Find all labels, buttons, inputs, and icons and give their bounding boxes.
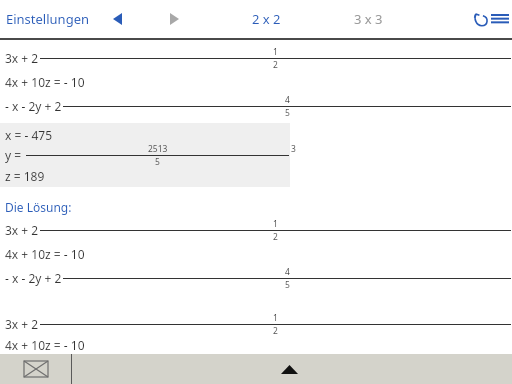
staticText: 4x + 10z = - 10 (5, 337, 85, 353)
staticText: 5 (285, 279, 290, 290)
staticText: 5 (285, 107, 290, 118)
staticText: 2513 (148, 143, 168, 155)
staticText: Die Lösung: (5, 199, 72, 215)
staticText: 2 (273, 325, 278, 336)
staticText: 5 (155, 156, 160, 167)
staticText: 4 (285, 266, 290, 278)
button[interactable]: Undo (468, 6, 494, 32)
staticText: 1 (273, 312, 278, 324)
button[interactable]: Mail (18, 355, 54, 383)
staticText: - x - 2y + 2 (5, 98, 62, 114)
button[interactable]: 2 x 2 (248, 6, 285, 32)
staticText: 3x + 2 (5, 222, 39, 238)
button[interactable]: Einstellungen (4, 6, 92, 32)
staticText: 2 (273, 59, 278, 70)
staticText: Einstellungen (6, 10, 90, 28)
staticText: 3x + 2 (5, 316, 39, 332)
staticText: 4x + 10z = - 10 (5, 74, 85, 90)
button[interactable]: Previous (106, 8, 128, 30)
staticText: x = - 475 (5, 127, 53, 143)
staticText: 1 (273, 218, 278, 230)
staticText: 4 (285, 94, 290, 106)
staticText: 2 (273, 231, 278, 242)
staticText: 4x + 10z = - 10 (5, 246, 85, 262)
button[interactable]: Die Lösung: (5, 199, 72, 215)
button[interactable]: Next (163, 8, 185, 30)
staticText: z = 189 (5, 168, 45, 184)
staticText: 1 (273, 46, 278, 58)
button[interactable]: Menu (488, 7, 512, 31)
button[interactable]: 3 x 3 (350, 6, 387, 32)
button[interactable]: Scroll up (272, 355, 306, 383)
staticText: y = (5, 147, 25, 163)
staticText: 3x + 2 (5, 50, 39, 66)
staticText: 3 x 3 (354, 10, 383, 28)
staticText: - x - 2y + 2 (5, 270, 62, 286)
staticText: 2 x 2 (252, 10, 281, 28)
